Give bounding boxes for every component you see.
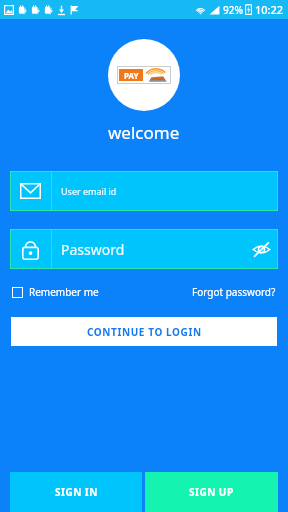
button[interactable]: SIGN IN — [10, 472, 142, 512]
staticText: SIGN IN — [55, 485, 98, 499]
button[interactable]: Email — [10, 171, 278, 211]
staticText: welcome — [108, 121, 180, 144]
other: Password — [10, 229, 51, 269]
staticText: 92% — [223, 3, 243, 17]
staticText: Forgot password? — [192, 285, 276, 299]
staticText: 10:22 — [255, 2, 284, 17]
staticText: User email id — [61, 185, 278, 197]
button[interactable]: Remember me — [12, 281, 99, 303]
button[interactable]: Show password — [244, 229, 278, 269]
button[interactable]: SIGN UP — [145, 472, 278, 512]
button[interactable]: Password — [10, 229, 278, 269]
other: Email — [10, 171, 51, 211]
staticText: Remember me — [29, 285, 99, 299]
button[interactable]: Forgot password? — [192, 281, 276, 303]
staticText: SIGN UP — [189, 485, 234, 499]
staticText: PAY — [124, 70, 139, 81]
staticText: Password — [61, 240, 244, 259]
staticText: CONTINUE TO LOGIN — [87, 325, 202, 339]
button[interactable]: CONTINUE TO LOGIN — [11, 317, 277, 346]
